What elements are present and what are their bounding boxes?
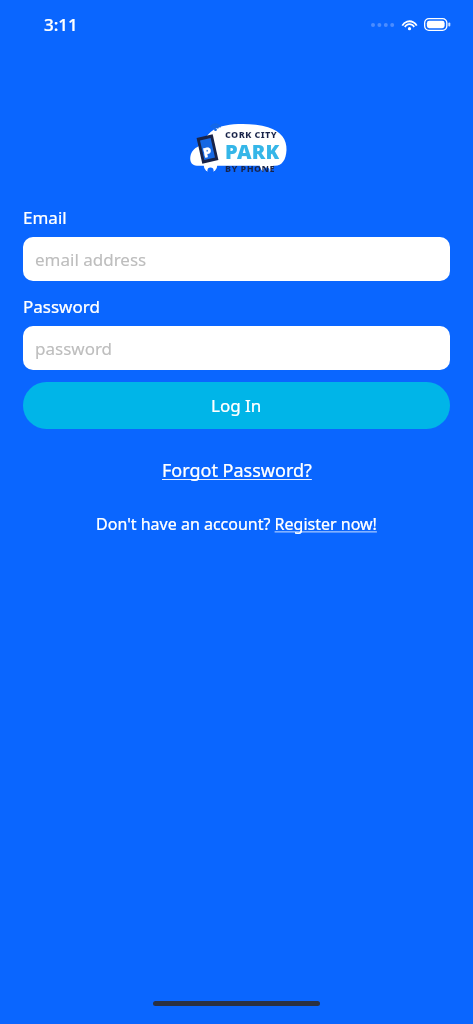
staticText: Email (23, 206, 67, 229)
staticText: BY PHONE (225, 162, 275, 174)
staticText: P (201, 142, 214, 162)
button[interactable]: Log In (23, 382, 450, 429)
button[interactable]: Forgot Password? (148, 453, 326, 488)
button[interactable]: password (23, 326, 450, 370)
other: Cork City Park By Phone logo (187, 121, 287, 177)
staticText: password (35, 337, 113, 360)
staticText: CORK CITY (225, 128, 278, 140)
staticText: PARK (225, 138, 280, 165)
staticText: email address (35, 248, 147, 271)
button[interactable]: Don't have an account? Register now! (82, 508, 391, 540)
button[interactable]: email address (23, 237, 450, 281)
staticText: Forgot Password? (162, 458, 312, 483)
staticText: Log In (211, 394, 262, 417)
staticText: 3:11 (44, 13, 78, 36)
staticText: Don't have an account? Register now! (96, 513, 377, 535)
staticText: Password (23, 295, 100, 318)
